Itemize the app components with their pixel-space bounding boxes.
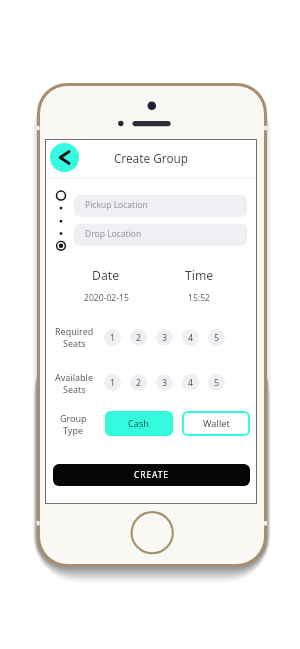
staticText: Pickup Location: [85, 199, 148, 211]
staticText: 4: [188, 377, 194, 389]
staticText: Create Group: [46, 150, 256, 166]
staticText: Group: [60, 412, 87, 424]
button[interactable]: CREATE: [53, 464, 250, 486]
staticText: CREATE: [134, 469, 169, 481]
staticText: Drop Location: [85, 228, 142, 240]
staticText: Type: [63, 424, 84, 436]
button[interactable]: Pickup Location: [74, 195, 247, 217]
staticText: 2020-02-15: [84, 292, 129, 304]
button[interactable]: 4: [182, 329, 199, 346]
staticText: 2: [136, 377, 142, 389]
staticText: 2: [136, 332, 142, 344]
button[interactable]: Cash: [105, 411, 173, 436]
button[interactable]: 4: [182, 374, 199, 391]
button[interactable]: Wallet: [182, 411, 250, 436]
staticText: Wallet: [203, 417, 230, 430]
button[interactable]: Back: [50, 143, 79, 172]
staticText: Date: [92, 267, 120, 284]
button[interactable]: 1: [104, 374, 121, 391]
staticText: Seats: [63, 337, 86, 349]
button[interactable]: 3: [156, 329, 173, 346]
staticText: 3: [162, 332, 168, 344]
staticText: 1: [110, 332, 116, 344]
button[interactable]: Drop Location: [74, 224, 247, 246]
staticText: 5: [214, 377, 220, 389]
button[interactable]: 5: [208, 329, 225, 346]
button[interactable]: 1: [104, 329, 121, 346]
button[interactable]: 3: [156, 374, 173, 391]
button[interactable]: 2: [130, 329, 147, 346]
staticText: 5: [214, 332, 220, 344]
staticText: 1: [110, 377, 116, 389]
staticText: Time: [185, 267, 214, 284]
staticText: 3: [162, 377, 168, 389]
staticText: Cash: [128, 417, 150, 430]
staticText: 15:52: [188, 292, 210, 304]
staticText: Required: [55, 325, 94, 337]
staticText: 4: [188, 332, 194, 344]
button[interactable]: 2: [130, 374, 147, 391]
button[interactable]: 5: [208, 374, 225, 391]
staticText: Seats: [63, 383, 86, 395]
staticText: Available: [55, 371, 93, 383]
